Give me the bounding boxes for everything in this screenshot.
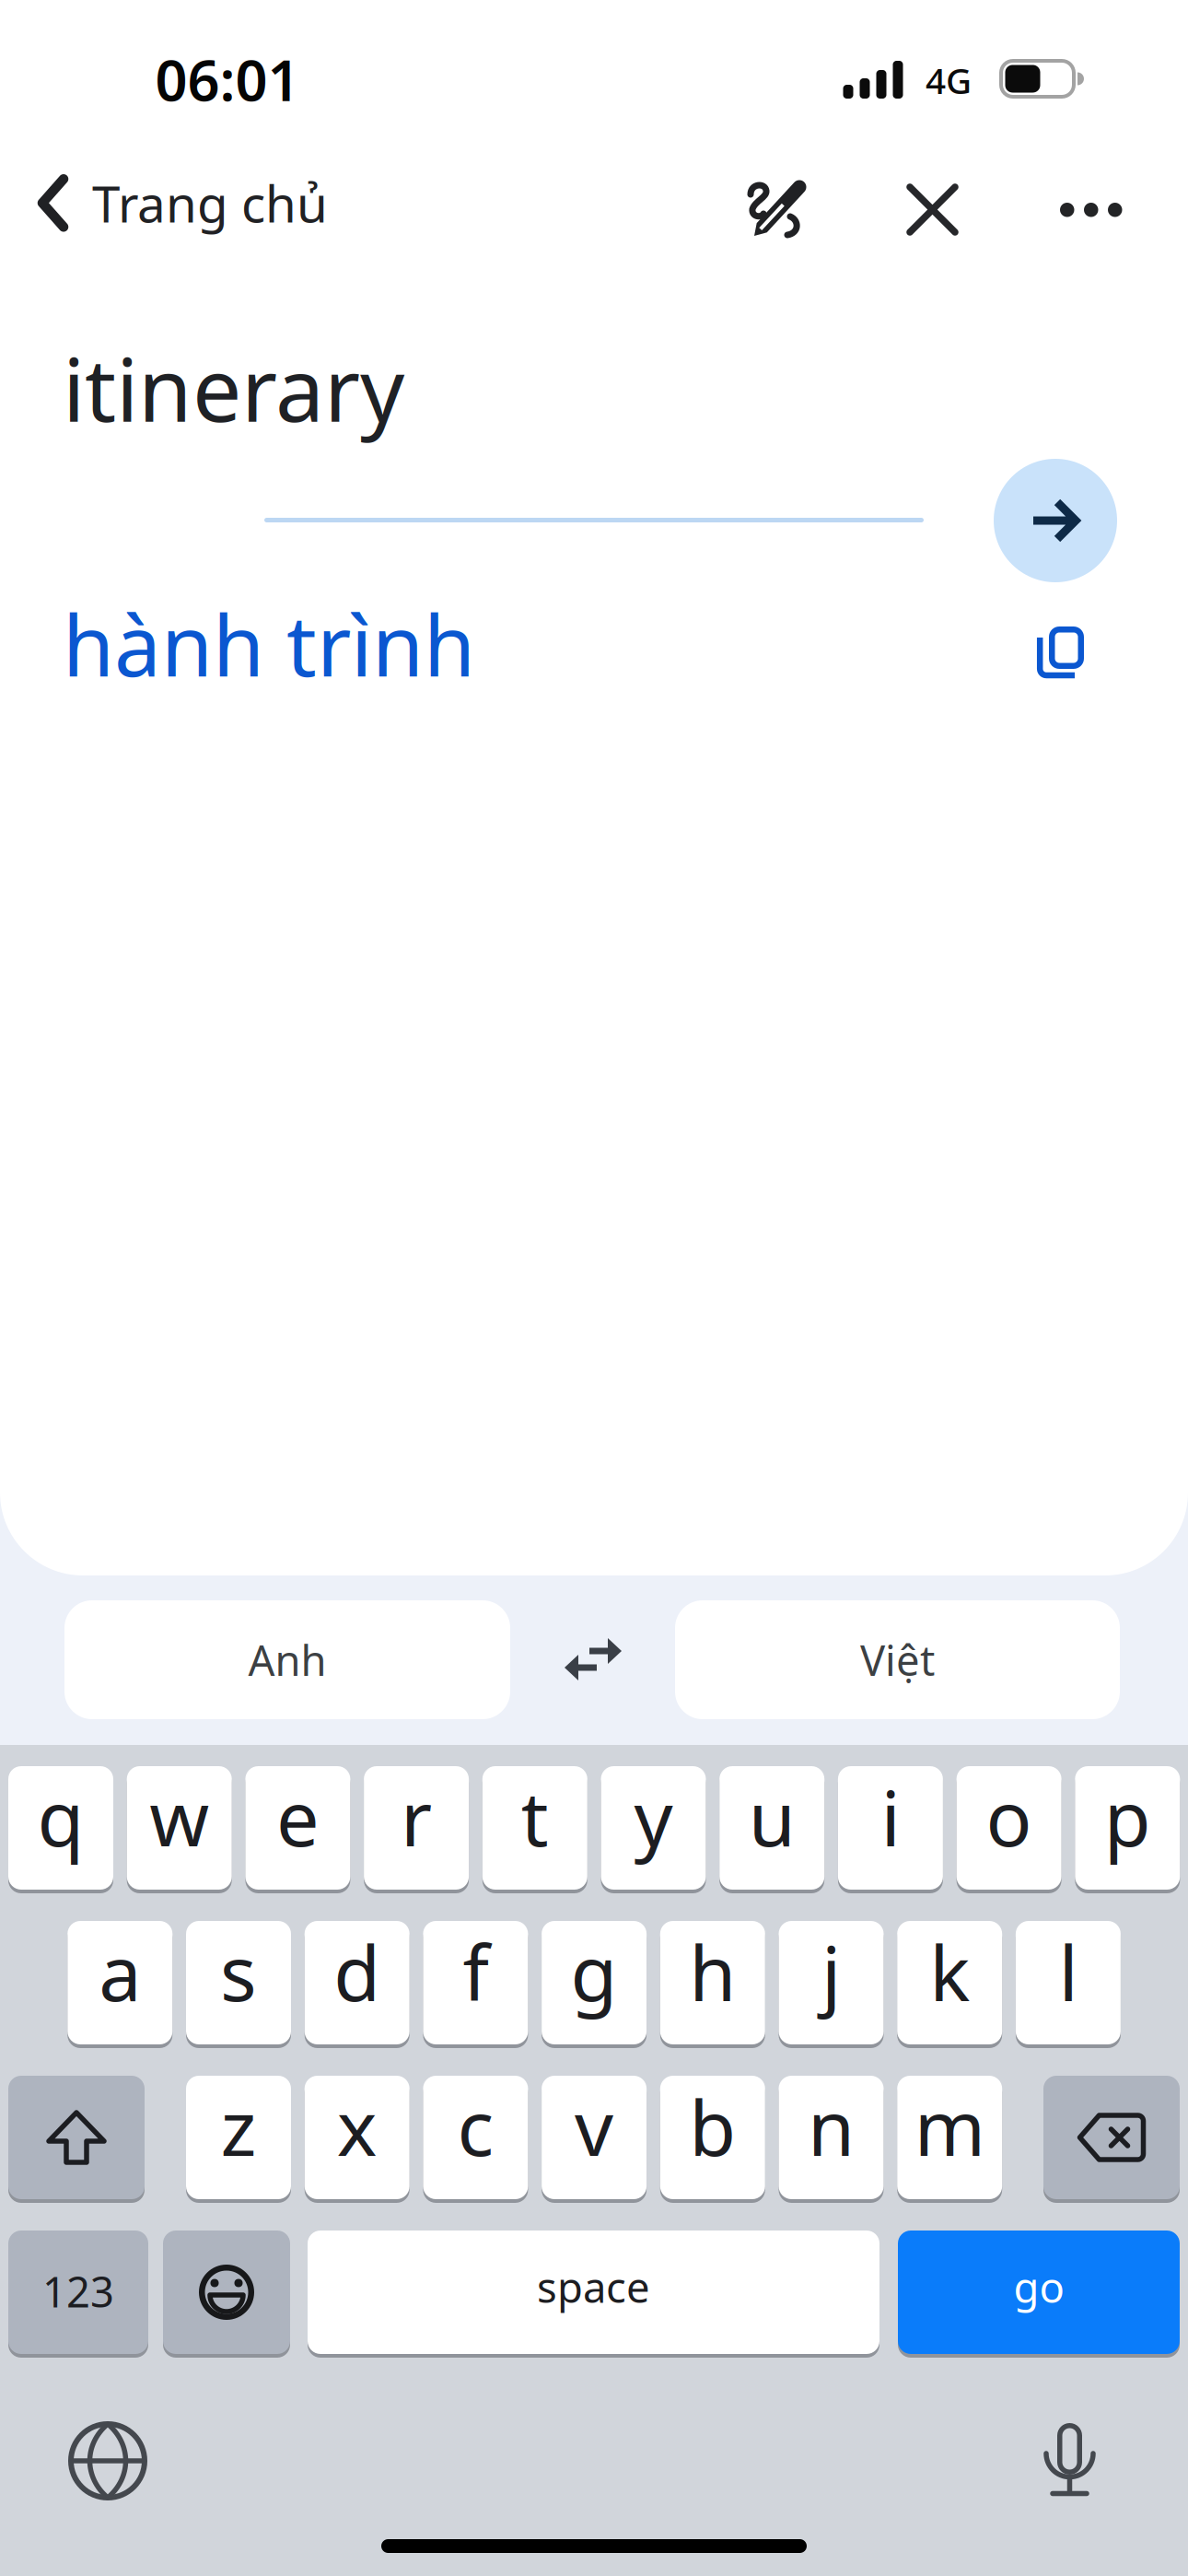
staticText: v (575, 2076, 613, 2177)
button[interactable]: x (305, 2076, 410, 2199)
button[interactable]: f (423, 1921, 528, 2044)
staticText: a (99, 1921, 141, 2022)
button[interactable]: w (127, 1766, 232, 1890)
button[interactable]: b (660, 2076, 765, 2199)
button[interactable]: Swap languages (563, 1633, 623, 1685)
staticText: Việt (860, 1632, 935, 1687)
staticText: b (689, 2076, 736, 2177)
button[interactable]: i (838, 1766, 943, 1890)
staticText: i (881, 1766, 900, 1867)
staticText: Trang chủ (92, 170, 328, 236)
button[interactable]: n (779, 2076, 884, 2199)
button[interactable]: r (364, 1766, 469, 1890)
staticText: w (149, 1766, 209, 1867)
button[interactable]: Shift (8, 2076, 145, 2199)
button[interactable]: Translate (994, 459, 1117, 582)
button[interactable]: a (68, 1921, 172, 2044)
button[interactable]: v (542, 2076, 647, 2199)
staticText: go (1013, 2259, 1064, 2314)
button[interactable]: u (719, 1766, 824, 1890)
staticText: h (689, 1921, 736, 2022)
staticText: r (401, 1766, 432, 1867)
button[interactable]: h (660, 1921, 765, 2044)
button[interactable]: 123 (8, 2231, 148, 2354)
staticText: g (571, 1921, 618, 2022)
button[interactable]: Anh (64, 1600, 510, 1719)
staticText: o (986, 1766, 1032, 1867)
staticText: q (37, 1766, 84, 1867)
staticText: n (808, 2076, 855, 2177)
staticText: l (1059, 1921, 1078, 2022)
staticText: Anh (248, 1632, 326, 1687)
button[interactable]: Copy translation (1037, 626, 1089, 686)
button[interactable]: space (308, 2231, 879, 2354)
button[interactable]: m (897, 2076, 1002, 2199)
button[interactable]: k (897, 1921, 1002, 2044)
staticText: z (221, 2076, 256, 2177)
button[interactable]: d (305, 1921, 410, 2044)
staticText: 123 (42, 2264, 114, 2319)
staticText: hành trình (63, 589, 475, 699)
button[interactable]: Handwriting (748, 181, 810, 240)
button[interactable]: z (186, 2076, 291, 2199)
button[interactable]: g (542, 1921, 647, 2044)
staticText: s (220, 1921, 257, 2022)
staticText: c (457, 2076, 494, 2177)
button[interactable]: Close (908, 185, 957, 234)
staticText: e (276, 1766, 319, 1867)
staticText: y (634, 1766, 673, 1867)
staticText: p (1104, 1766, 1151, 1867)
button[interactable]: y (601, 1766, 706, 1890)
staticText: j (821, 1921, 841, 2022)
button[interactable]: p (1075, 1766, 1180, 1890)
button[interactable]: o (956, 1766, 1061, 1890)
staticText: u (748, 1766, 795, 1867)
staticText: space (537, 2259, 650, 2314)
staticText: itinerary (63, 330, 404, 446)
staticText: k (929, 1921, 970, 2022)
staticText: x (337, 2076, 377, 2177)
button[interactable]: Next keyboard (68, 2421, 147, 2500)
button[interactable]: Việt (675, 1600, 1120, 1719)
staticText: 4G (926, 56, 972, 104)
button[interactable]: go (898, 2231, 1180, 2354)
button[interactable]: j (779, 1921, 884, 2044)
staticText: m (914, 2076, 985, 2177)
button[interactable]: More options (1060, 203, 1122, 217)
staticText: f (463, 1921, 488, 2022)
button[interactable]: e (245, 1766, 350, 1890)
button[interactable]: l (1016, 1921, 1121, 2044)
staticText: d (334, 1921, 381, 2022)
button[interactable]: c (423, 2076, 528, 2199)
button[interactable]: Emoji (163, 2231, 290, 2354)
button[interactable]: Dictate (1044, 2422, 1096, 2500)
button[interactable]: q (8, 1766, 113, 1890)
staticText: 06:01 (155, 42, 300, 117)
button[interactable]: t (482, 1766, 587, 1890)
button[interactable]: Delete (1043, 2076, 1180, 2199)
button[interactable]: Back (38, 170, 328, 236)
staticText: t (521, 1766, 549, 1867)
button[interactable]: s (186, 1921, 291, 2044)
